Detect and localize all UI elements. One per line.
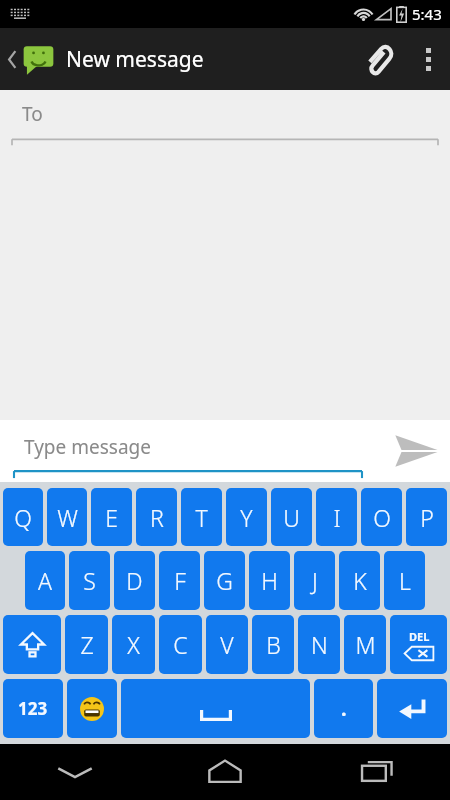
button[interactable]: 123 [3,679,63,738]
button[interactable]: New message [0,28,212,90]
staticText: G [216,565,233,596]
staticText: . [341,695,347,722]
button[interactable]: Space [121,679,310,738]
staticText: F [174,565,186,596]
button[interactable]: To [0,90,450,148]
button[interactable]: X [112,615,155,674]
staticText: D [126,565,143,596]
button[interactable]: Shift [3,615,61,674]
staticText: J [312,565,318,596]
staticText: P [420,502,434,533]
staticText: M [355,629,376,660]
button[interactable]: W [47,488,87,546]
staticText: R [150,502,164,533]
staticText: DEL [409,629,430,644]
button[interactable]: J [294,551,335,610]
staticText: X [127,629,140,660]
staticText: E [105,502,118,533]
staticText: U [283,502,300,533]
button[interactable]: Hide keyboard [0,744,150,800]
button[interactable]: Y [226,488,267,546]
button[interactable]: Delete [390,615,447,674]
staticText: S [83,565,96,596]
button[interactable]: Q [3,488,43,546]
staticText: C [173,629,188,660]
button[interactable]: G [204,551,245,610]
staticText: Z [80,629,94,660]
button[interactable]: B [252,615,294,674]
staticText: L [399,565,411,596]
button[interactable]: T [181,488,222,546]
button[interactable]: R [136,488,177,546]
button[interactable]: M [344,615,386,674]
staticText: W [57,502,78,533]
button[interactable]: I [316,488,357,546]
button[interactable]: A [25,551,65,610]
button[interactable]: H [249,551,290,610]
button[interactable]: S [69,551,110,610]
staticText: H [261,565,278,596]
button[interactable]: Send [382,420,450,482]
button[interactable]: Type message [0,420,372,482]
button[interactable]: D [114,551,155,610]
button[interactable]: Enter [377,679,447,738]
button[interactable]: V [206,615,248,674]
staticText: T [195,502,208,533]
button[interactable]: O [361,488,402,546]
staticText: I [333,502,341,533]
staticText: A [38,565,52,596]
staticText: To [22,101,43,127]
staticText: 123 [18,697,48,720]
staticText: K [353,565,367,596]
button[interactable]: K [339,551,380,610]
button[interactable]: L [384,551,425,610]
button[interactable]: C [159,615,202,674]
staticText: Type message [24,434,151,460]
button[interactable]: Z [65,615,108,674]
button[interactable]: U [271,488,312,546]
staticText: O [373,502,391,533]
staticText: Q [14,502,32,533]
button[interactable]: E [91,488,132,546]
button[interactable]: Home [150,744,300,800]
button[interactable]: F [159,551,200,610]
button[interactable]: P [406,488,447,546]
button[interactable]: . [314,679,373,738]
button[interactable]: Attach [350,28,406,90]
button[interactable]: Recent apps [300,744,450,800]
staticText: Y [240,502,253,533]
staticText: V [220,629,234,660]
staticText: New message [66,45,204,74]
staticText: 5:43 [412,4,442,24]
staticText: B [266,629,281,660]
button[interactable]: More options [406,28,450,90]
staticText: N [311,629,328,660]
button[interactable]: Emoji [67,679,117,738]
button[interactable]: N [298,615,340,674]
